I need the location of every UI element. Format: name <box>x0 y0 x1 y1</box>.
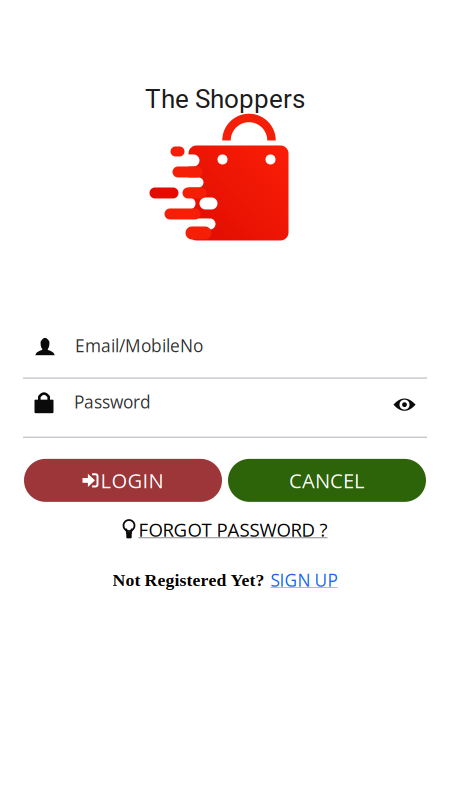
staticText: FORGOT PASSWORD ? <box>138 517 327 542</box>
button[interactable]: SIGN UP <box>270 568 337 592</box>
button[interactable]: CANCEL <box>228 459 426 502</box>
staticText: The Shoppers <box>145 84 305 114</box>
staticText: Email/MobileNo <box>75 334 203 357</box>
staticText: SIGN UP <box>270 568 337 592</box>
button[interactable]: LOGIN <box>24 459 222 502</box>
staticText: CANCEL <box>289 467 365 494</box>
button[interactable]: FORGOT PASSWORD ? <box>122 515 327 544</box>
staticText: Not Registered Yet? <box>112 570 264 590</box>
staticText: LOGIN <box>100 467 163 494</box>
button[interactable]: Show password <box>385 386 427 417</box>
staticText: Password <box>74 390 151 413</box>
